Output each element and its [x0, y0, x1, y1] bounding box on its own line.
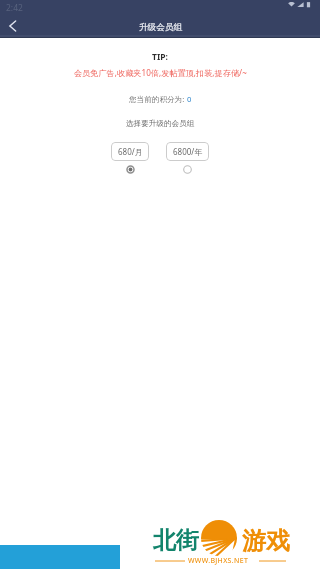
staticText: 680/月	[118, 146, 143, 157]
staticText: TIP:	[152, 51, 168, 63]
staticText: 会员免广告,收藏夹10倍,发帖置顶,扣装,提存储/~	[74, 67, 247, 78]
staticText: 北街	[153, 526, 199, 555]
staticText: 2:42	[6, 2, 23, 14]
button[interactable]: 680/月	[111, 142, 149, 174]
button[interactable]: 6800/年	[166, 142, 209, 174]
staticText: 游戏	[242, 526, 290, 556]
staticText: WWW.BJHXS.NET	[188, 556, 249, 566]
button[interactable]: Back	[0, 13, 26, 39]
staticText: 0	[187, 94, 192, 104]
staticText: 6800/年	[173, 146, 203, 157]
staticText: 升级会员组	[139, 22, 182, 33]
staticText: 您当前的积分为:	[129, 94, 187, 104]
staticText: 选择要升级的会员组	[126, 119, 195, 129]
